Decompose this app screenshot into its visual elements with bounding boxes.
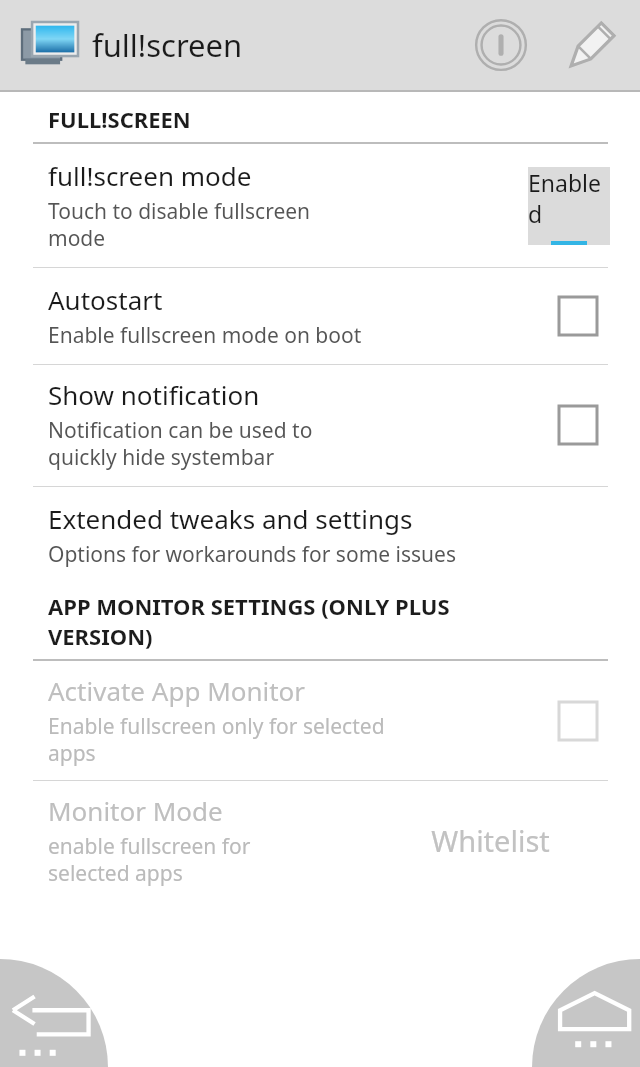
button[interactable]: Activate App Monitor [0, 661, 640, 780]
staticText: Touch to disable fullscreen mode [48, 197, 311, 253]
staticText: Activate App Monitor [48, 673, 306, 708]
button[interactable]: Home [532, 981, 640, 1067]
staticText: Enable fullscreen mode on boot [48, 321, 362, 350]
button[interactable]: Whitelist [370, 821, 610, 860]
staticText: FULL!SCREEN [48, 104, 191, 134]
button[interactable]: Toggle [546, 393, 610, 457]
staticText: full!screen [92, 24, 243, 66]
staticText: Autostart [48, 282, 163, 317]
staticText: enable fullscreen for selected apps [48, 832, 251, 888]
button[interactable]: Monitor Mode [0, 781, 640, 900]
button[interactable]: Info [458, 2, 544, 88]
button[interactable]: Back [0, 981, 108, 1067]
staticText: Show notification [48, 377, 260, 412]
staticText: Options for workarounds for some issues [48, 540, 456, 569]
button[interactable]: Edit [544, 0, 640, 90]
staticText: APP MONITOR SETTINGS (ONLY PLUS VERSION) [48, 591, 450, 651]
button[interactable]: Autostart [0, 268, 640, 364]
staticText: Extended tweaks and settings [48, 501, 413, 536]
staticText: Enabled [528, 167, 610, 229]
button[interactable]: Extended tweaks and settings [0, 487, 640, 579]
button[interactable]: Toggle [546, 284, 610, 348]
button[interactable]: Toggle [546, 689, 610, 753]
button[interactable]: full!screen mode [0, 144, 640, 267]
staticText: Notification can be used to quickly hide… [48, 416, 313, 472]
staticText: Enable fullscreen only for selected apps [48, 712, 385, 768]
staticText: full!screen mode [48, 158, 252, 193]
button[interactable]: Show notification [0, 365, 640, 486]
staticText: Monitor Mode [48, 793, 223, 828]
button[interactable]: Enabled [528, 167, 610, 245]
staticText: Whitelist [431, 821, 550, 860]
